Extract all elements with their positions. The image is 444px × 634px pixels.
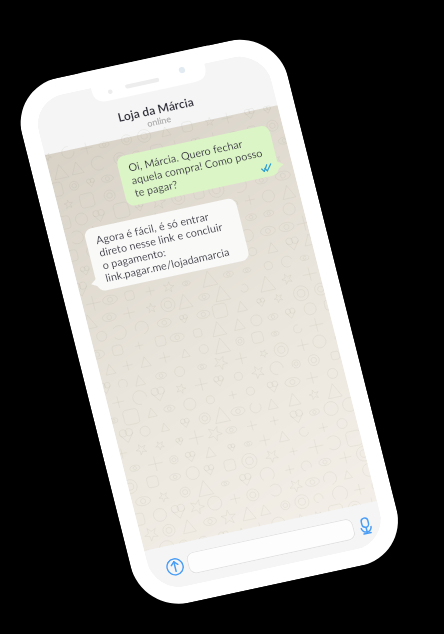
button[interactable]: Loja da Márcia bbox=[11, 0, 298, 246]
button[interactable] bbox=[177, 453, 365, 634]
button[interactable]: Attach file bbox=[157, 549, 193, 584]
button[interactable]: Oi, Márcia. Quero fechar aquela compra! … bbox=[97, 65, 299, 266]
staticText: Oi, Márcia. Quero fechar aquela compra! … bbox=[112, 82, 281, 250]
staticText: online bbox=[142, 103, 177, 138]
button[interactable]: Agora é fácil, é só entrar direto nesse … bbox=[60, 138, 274, 351]
button[interactable]: Record voice message bbox=[351, 511, 380, 540]
staticText: Loja da Márcia bbox=[111, 64, 201, 153]
staticText: Agora é fácil, é só entrar direto nesse … bbox=[75, 159, 250, 332]
